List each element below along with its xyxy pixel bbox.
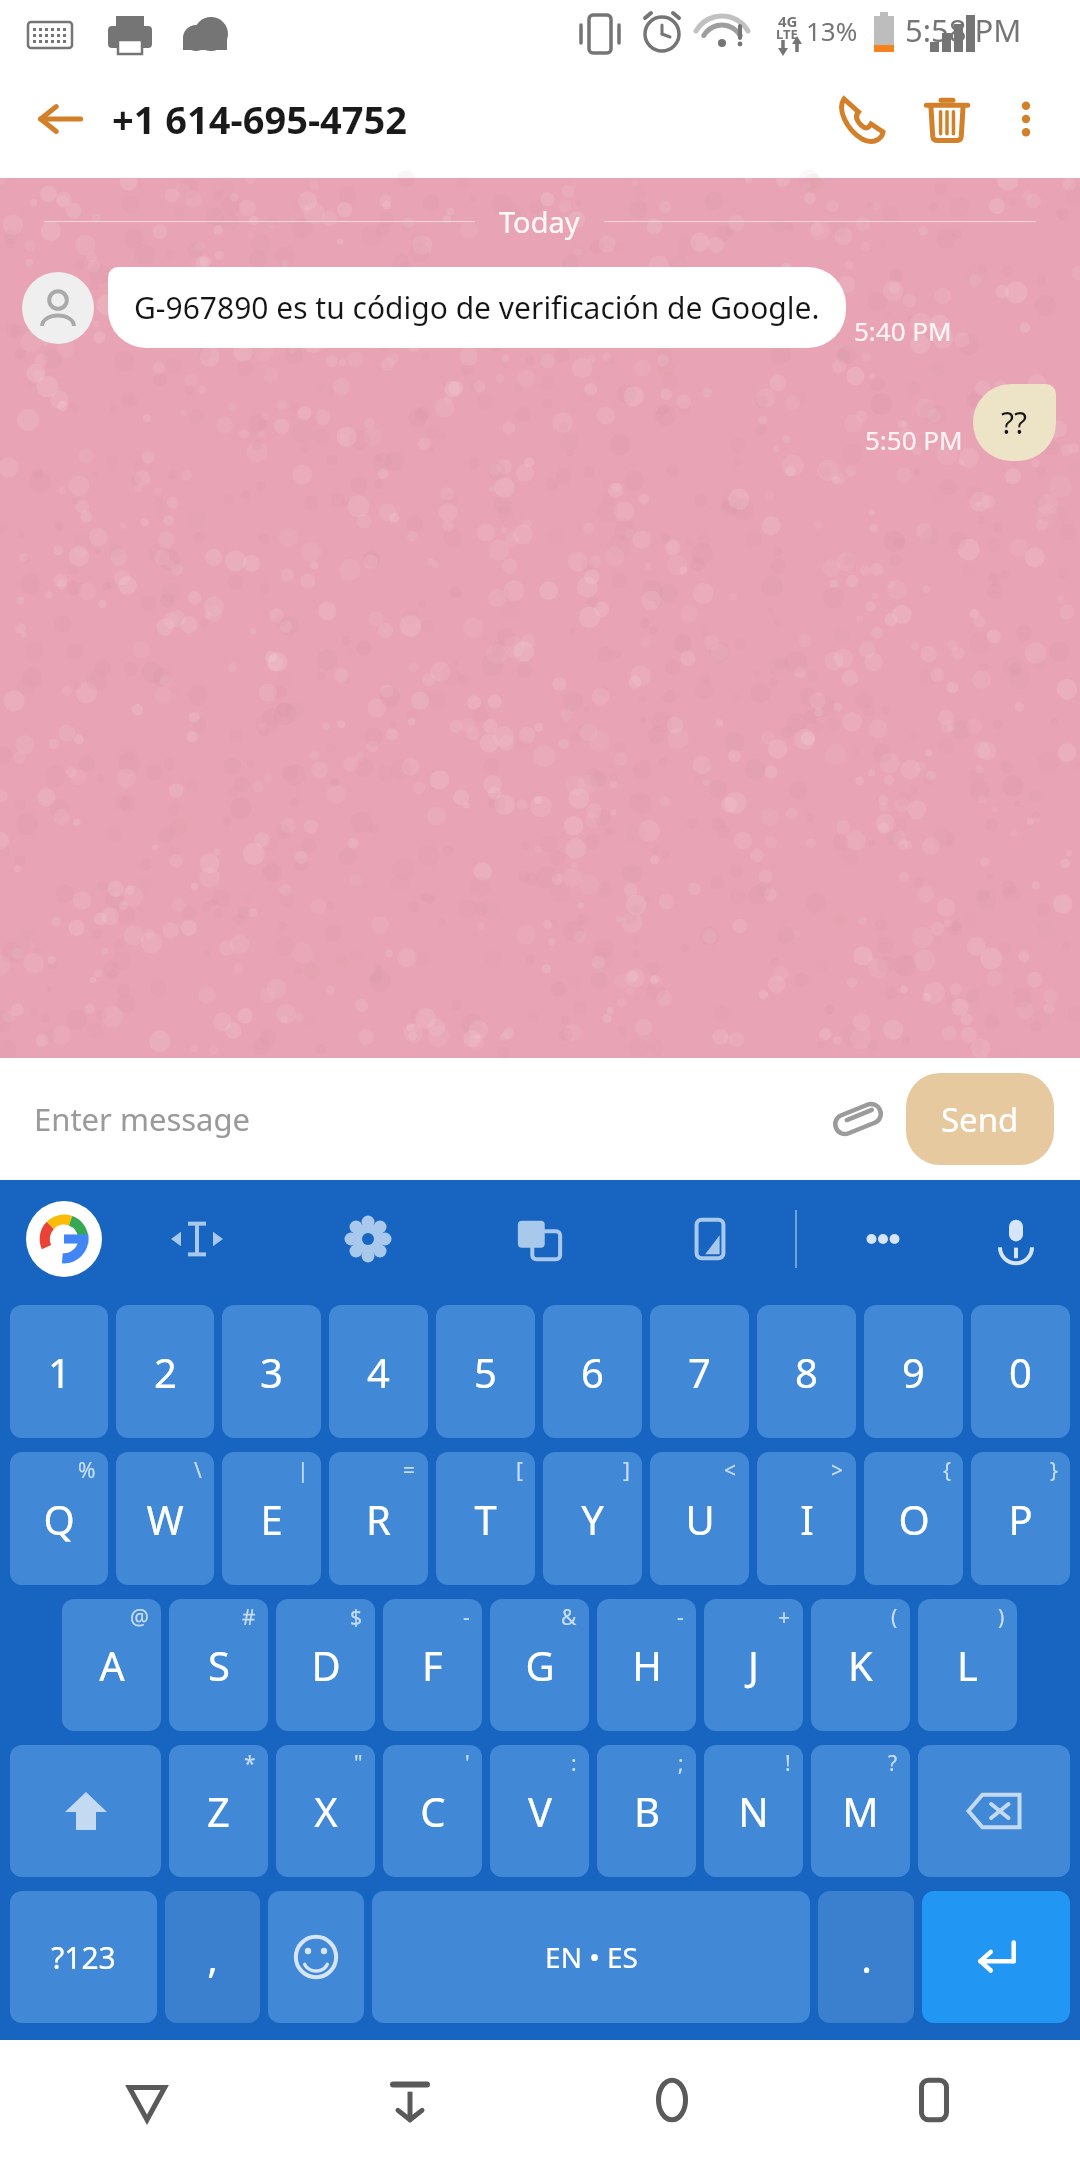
- button[interactable]: [22, 272, 94, 344]
- staticText: #: [242, 1603, 256, 1632]
- button[interactable]: X: [276, 1745, 375, 1877]
- button[interactable]: Back: [28, 87, 92, 151]
- button[interactable]: L: [918, 1599, 1017, 1731]
- button[interactable]: +1 614-695-4752: [112, 93, 818, 145]
- staticText: 7: [688, 1345, 711, 1399]
- button[interactable]: S: [169, 1599, 268, 1731]
- button[interactable]: Enter message: [34, 1098, 816, 1140]
- button[interactable]: N: [704, 1745, 803, 1877]
- button[interactable]: Emoji: [268, 1891, 364, 2023]
- button[interactable]: Q: [10, 1452, 108, 1585]
- button[interactable]: M: [811, 1745, 910, 1877]
- staticText: >: [831, 1456, 844, 1485]
- button[interactable]: Back: [92, 2045, 202, 2155]
- staticText: [: [516, 1456, 523, 1485]
- staticText: C: [420, 1784, 446, 1838]
- button[interactable]: A: [62, 1599, 161, 1731]
- button[interactable]: Hide keyboard: [355, 2045, 465, 2155]
- button[interactable]: H: [597, 1599, 696, 1731]
- button[interactable]: P: [971, 1452, 1070, 1585]
- button[interactable]: .: [818, 1891, 914, 2023]
- button[interactable]: 0: [971, 1305, 1070, 1438]
- button[interactable]: C: [383, 1745, 482, 1877]
- staticText: Z: [207, 1784, 230, 1838]
- button[interactable]: G-967890 es tu código de verificación de…: [108, 267, 846, 348]
- button[interactable]: V: [490, 1745, 589, 1877]
- button[interactable]: ?123: [10, 1891, 157, 2023]
- button[interactable]: Google search: [16, 1191, 112, 1287]
- staticText: R: [366, 1492, 391, 1546]
- staticText: E: [260, 1492, 283, 1546]
- staticText: Q: [43, 1492, 75, 1546]
- button[interactable]: Translate: [453, 1189, 624, 1289]
- button[interactable]: EN • ES: [372, 1891, 810, 2023]
- button[interactable]: Voice input: [968, 1191, 1064, 1287]
- staticText: :: [571, 1749, 577, 1778]
- button[interactable]: 1: [10, 1305, 108, 1438]
- button[interactable]: R: [329, 1452, 428, 1585]
- staticText: 5:40 PM: [854, 313, 952, 348]
- button[interactable]: Shift: [10, 1745, 161, 1877]
- button[interactable]: U: [650, 1452, 749, 1585]
- staticText: N: [738, 1784, 769, 1838]
- button[interactable]: Attach: [816, 1077, 900, 1161]
- button[interactable]: 5: [436, 1305, 535, 1438]
- staticText: 6: [581, 1345, 604, 1399]
- button[interactable]: K: [811, 1599, 910, 1731]
- staticText: V: [528, 1784, 552, 1838]
- staticText: T: [474, 1492, 497, 1546]
- button[interactable]: I: [757, 1452, 856, 1585]
- button[interactable]: E: [222, 1452, 321, 1585]
- button[interactable]: B: [597, 1745, 696, 1877]
- staticText: ??: [1001, 402, 1028, 443]
- button[interactable]: Z: [169, 1745, 268, 1877]
- button[interactable]: ,: [165, 1891, 260, 2023]
- staticText: L: [957, 1638, 978, 1692]
- button[interactable]: 8: [757, 1305, 856, 1438]
- staticText: .: [861, 1930, 872, 1984]
- button[interactable]: J: [704, 1599, 803, 1731]
- button[interactable]: 6: [543, 1305, 642, 1438]
- button[interactable]: O: [864, 1452, 963, 1585]
- staticText: G-967890 es tu código de verificación de…: [134, 287, 820, 328]
- button[interactable]: Settings: [282, 1189, 453, 1289]
- staticText: Send: [941, 1097, 1019, 1142]
- button[interactable]: More: [797, 1189, 968, 1289]
- button[interactable]: 7: [650, 1305, 749, 1438]
- staticText: 13%: [806, 13, 858, 48]
- staticText: K: [848, 1638, 873, 1692]
- button[interactable]: Recents: [879, 2045, 989, 2155]
- button[interactable]: 4: [329, 1305, 428, 1438]
- staticText: ?123: [51, 1937, 116, 1978]
- button[interactable]: Cursor control: [112, 1189, 282, 1289]
- staticText: S: [208, 1638, 230, 1692]
- staticText: ': [465, 1749, 470, 1778]
- button[interactable]: Y: [543, 1452, 642, 1585]
- button[interactable]: Send: [906, 1073, 1054, 1165]
- button[interactable]: 2: [116, 1305, 214, 1438]
- button[interactable]: 3: [222, 1305, 321, 1438]
- staticText: &: [561, 1603, 577, 1632]
- staticText: $: [350, 1603, 363, 1632]
- button[interactable]: Home: [617, 2045, 727, 2155]
- staticText: J: [748, 1638, 759, 1692]
- button[interactable]: ??: [973, 384, 1056, 461]
- button[interactable]: Sticker: [624, 1189, 795, 1289]
- staticText: <: [724, 1456, 737, 1485]
- button[interactable]: G: [490, 1599, 589, 1731]
- staticText: P: [1008, 1492, 1033, 1546]
- staticText: O: [898, 1492, 930, 1546]
- button[interactable]: T: [436, 1452, 535, 1585]
- staticText: -: [677, 1603, 684, 1632]
- button[interactable]: W: [116, 1452, 214, 1585]
- button[interactable]: Backspace: [918, 1745, 1070, 1877]
- button[interactable]: Call: [818, 76, 904, 162]
- button[interactable]: 9: [864, 1305, 963, 1438]
- button[interactable]: F: [383, 1599, 482, 1731]
- staticText: 5:50 PM: [865, 422, 963, 457]
- button[interactable]: More options: [990, 83, 1062, 155]
- button[interactable]: Delete: [904, 76, 990, 162]
- staticText: \: [194, 1456, 202, 1485]
- button[interactable]: D: [276, 1599, 375, 1731]
- button[interactable]: Enter: [922, 1891, 1070, 2023]
